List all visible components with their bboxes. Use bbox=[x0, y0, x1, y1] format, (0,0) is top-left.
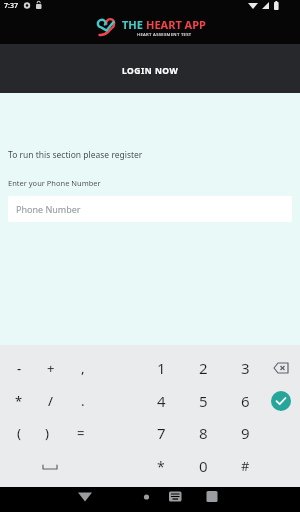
button[interactable]: 9 bbox=[229, 420, 261, 446]
staticText: ( bbox=[17, 424, 22, 442]
staticText: / bbox=[48, 392, 54, 410]
staticText: 4 bbox=[157, 391, 166, 411]
button[interactable]: * bbox=[3, 388, 35, 414]
staticText: Enter your Phone Number bbox=[8, 178, 101, 188]
button[interactable]: ( bbox=[3, 420, 35, 446]
staticText: 6 bbox=[241, 391, 250, 411]
button[interactable] bbox=[141, 491, 152, 502]
staticText: 8 bbox=[199, 423, 208, 443]
staticText: - bbox=[17, 359, 22, 377]
button[interactable]: * bbox=[145, 453, 177, 479]
button[interactable]: Phone Number bbox=[8, 196, 292, 222]
staticText: To run this section please register bbox=[8, 149, 143, 161]
button[interactable]: 4 bbox=[145, 388, 177, 414]
button[interactable] bbox=[168, 490, 183, 503]
button[interactable]: - bbox=[3, 355, 35, 381]
button[interactable] bbox=[205, 490, 219, 503]
button[interactable]: . bbox=[67, 388, 99, 414]
button[interactable]: 7 bbox=[145, 420, 177, 446]
button[interactable]: LOGIN NOW bbox=[0, 44, 300, 93]
button[interactable]: 2 bbox=[187, 355, 219, 381]
staticText: THE bbox=[122, 17, 146, 32]
button[interactable]: / bbox=[35, 388, 67, 414]
button[interactable]: 3 bbox=[229, 355, 261, 381]
staticText: + bbox=[47, 359, 55, 377]
button[interactable]: 5 bbox=[187, 388, 219, 414]
button[interactable]: = bbox=[65, 420, 97, 446]
staticText: Phone Number bbox=[16, 203, 81, 215]
staticText: 7:37 bbox=[4, 1, 18, 11]
staticText: . bbox=[81, 392, 85, 410]
staticText: 7 bbox=[157, 423, 166, 443]
button[interactable]: + bbox=[35, 355, 67, 381]
staticText: # bbox=[241, 457, 250, 475]
button[interactable] bbox=[38, 458, 62, 474]
staticText: LOGIN NOW bbox=[122, 65, 179, 77]
staticText: 0 bbox=[199, 456, 208, 476]
button[interactable]: ) bbox=[31, 420, 63, 446]
staticText: , bbox=[81, 359, 85, 377]
button[interactable]: # bbox=[229, 453, 261, 479]
staticText: = bbox=[77, 424, 85, 442]
button[interactable] bbox=[272, 359, 291, 377]
staticText: * bbox=[157, 457, 165, 476]
button[interactable]: 6 bbox=[229, 388, 261, 414]
staticText: HEART APP bbox=[146, 17, 206, 32]
staticText: ) bbox=[45, 424, 50, 442]
staticText: 1 bbox=[157, 358, 166, 378]
button[interactable]: 8 bbox=[187, 420, 219, 446]
button[interactable] bbox=[76, 489, 94, 505]
staticText: 9 bbox=[241, 423, 250, 443]
button[interactable] bbox=[271, 391, 291, 411]
staticText: 3 bbox=[241, 358, 250, 378]
button[interactable]: , bbox=[67, 355, 99, 381]
staticText: 5 bbox=[199, 391, 208, 411]
staticText: HEART ASSESMENT TEST bbox=[137, 32, 192, 38]
staticText: 2 bbox=[199, 358, 208, 378]
button[interactable]: 1 bbox=[145, 355, 177, 381]
staticText: * bbox=[15, 392, 23, 410]
button[interactable]: 0 bbox=[187, 453, 219, 479]
